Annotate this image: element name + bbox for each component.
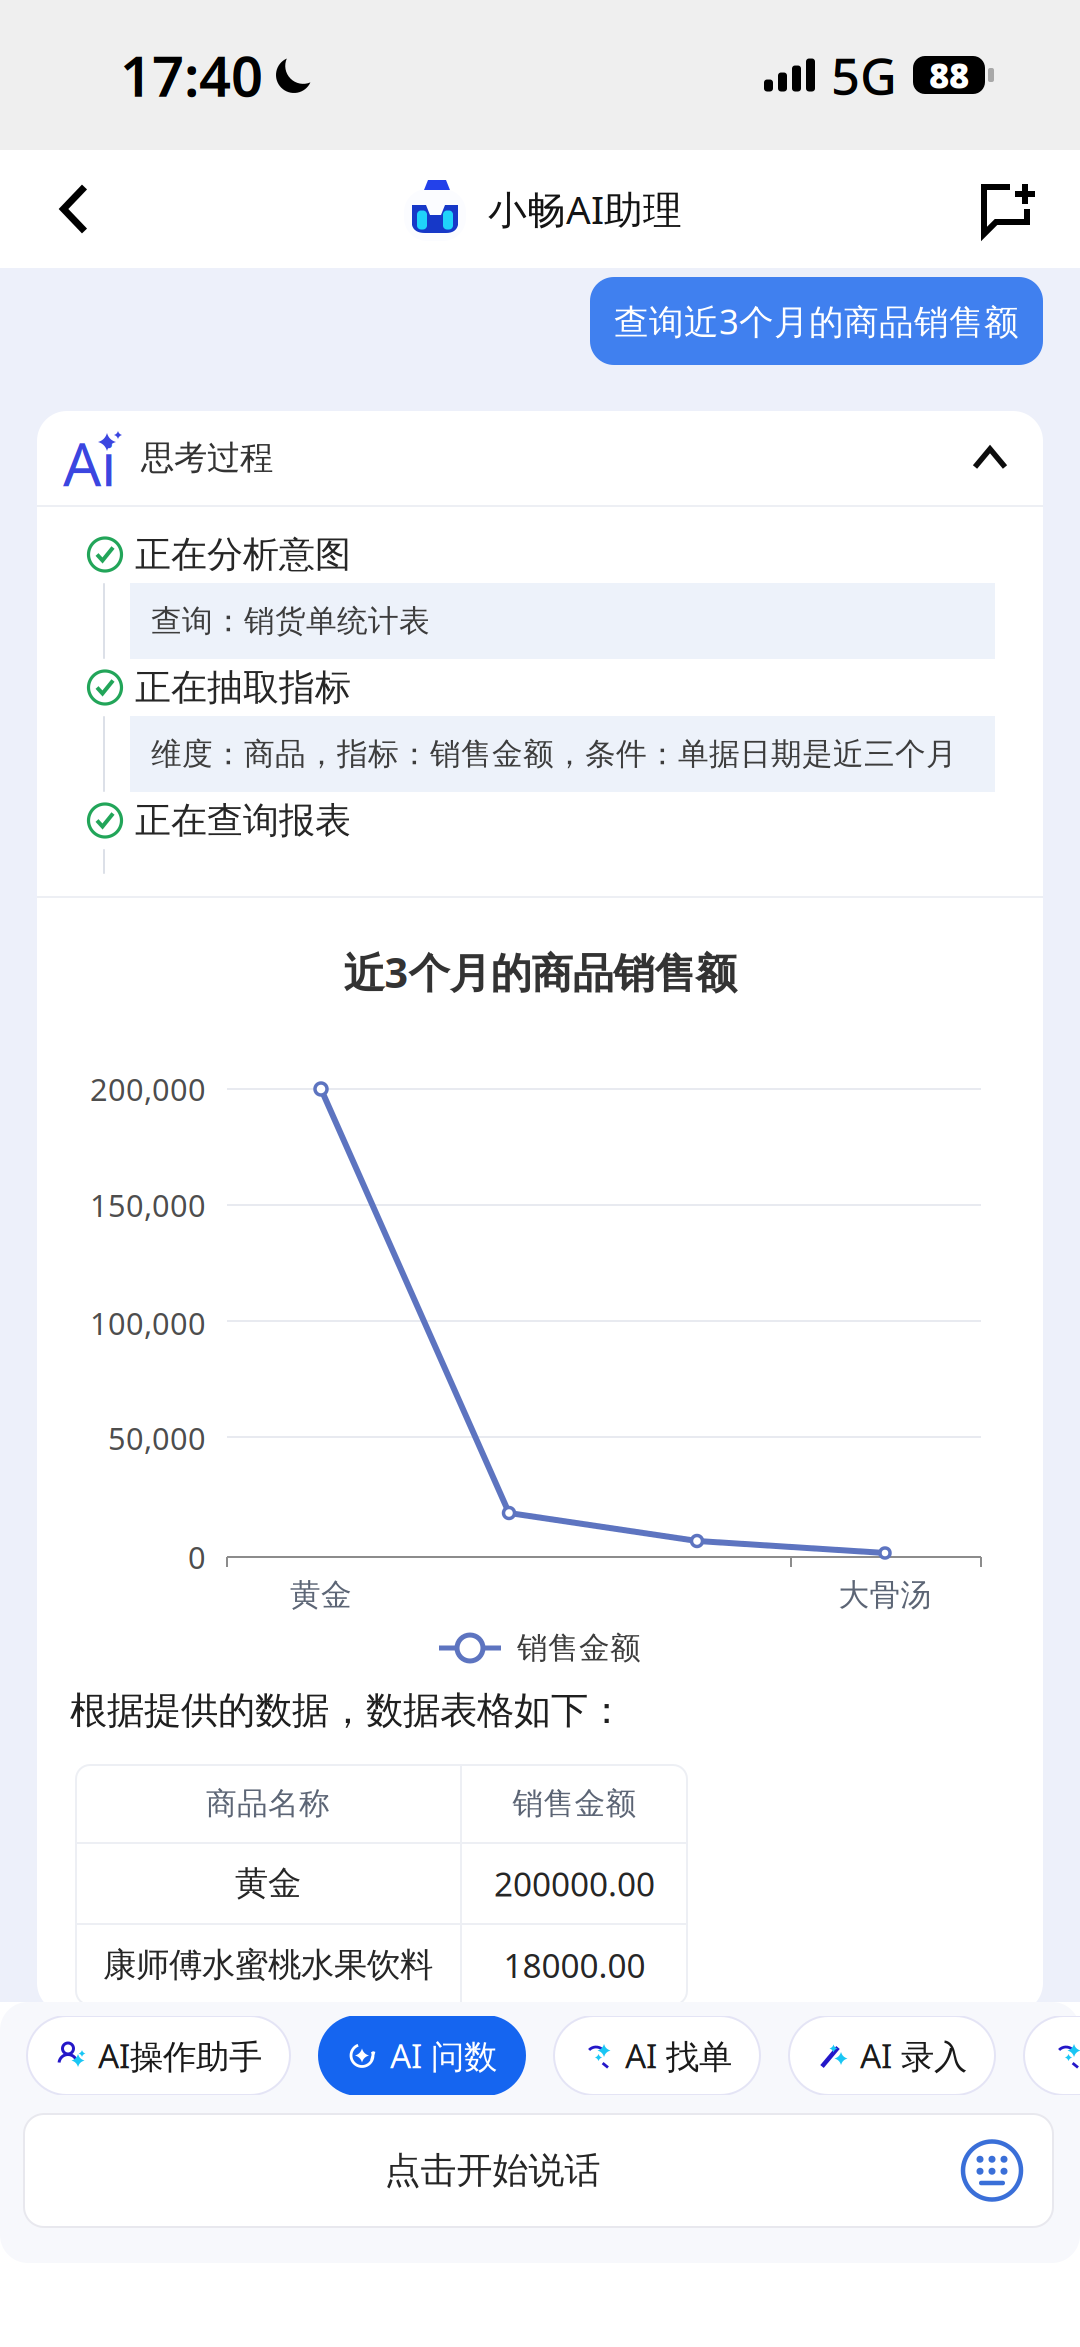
staticText: 商品名称 [206, 1785, 330, 1822]
button[interactable]: 点击开始说话 [24, 2114, 1053, 2227]
button[interactable]: AI 录入 [789, 2016, 995, 2095]
staticText: 点击开始说话 [384, 2148, 600, 2193]
staticText: AI操作助手 [98, 2033, 262, 2078]
staticText: 100,000 [90, 1303, 206, 1343]
staticText: 销售金额 [517, 1629, 641, 1667]
staticText: 大骨汤 [838, 1576, 931, 1614]
staticText: 查询：销货单统计表 [151, 602, 430, 640]
staticText: 正在分析意图 [135, 532, 351, 577]
staticText: AI 问数 [390, 2033, 497, 2078]
staticText: 200000.00 [494, 1861, 655, 1906]
staticText: 17:40 [120, 38, 263, 112]
staticText: AI 找单 [625, 2033, 732, 2078]
button[interactable]: AI 问数 [319, 2016, 525, 2095]
staticText: 200,000 [90, 1069, 206, 1109]
button[interactable]: AI 对话 [1024, 2016, 1080, 2095]
staticText: 销售金额 [512, 1785, 636, 1822]
staticText: 正在抽取指标 [135, 665, 351, 710]
staticText: 近3个月的商品销售额 [343, 945, 736, 999]
button[interactable]: Back [0, 150, 124, 268]
staticText: 50,000 [108, 1418, 206, 1458]
staticText: 150,000 [90, 1185, 206, 1225]
staticText: 正在查询报表 [135, 798, 351, 843]
button[interactable]: New chat [958, 150, 1080, 268]
staticText: 查询近3个月的商品销售额 [614, 298, 1019, 344]
staticText: 黄金 [235, 1863, 301, 1904]
staticText: 根据提供的数据，数据表格如下： [70, 1688, 625, 1733]
button[interactable]: Ai [37, 411, 1043, 505]
staticText: 黄金 [290, 1576, 352, 1614]
staticText: 88 [929, 52, 969, 98]
staticText: 0 [188, 1537, 206, 1577]
staticText: 5G [831, 41, 897, 109]
staticText: Ai [63, 423, 116, 503]
staticText: 18000.00 [503, 1943, 645, 1987]
button[interactable]: AI 找单 [554, 2016, 760, 2095]
staticText: 康师傅水蜜桃水果饮料 [103, 1944, 433, 1985]
staticText: 维度：商品，指标：销售金额，条件：单据日期是近三个月 [151, 735, 957, 773]
staticText: 小畅AI助理 [488, 183, 682, 235]
staticText: AI 录入 [860, 2033, 967, 2078]
button[interactable]: AI操作助手 [27, 2016, 290, 2095]
staticText: 思考过程 [141, 437, 273, 478]
